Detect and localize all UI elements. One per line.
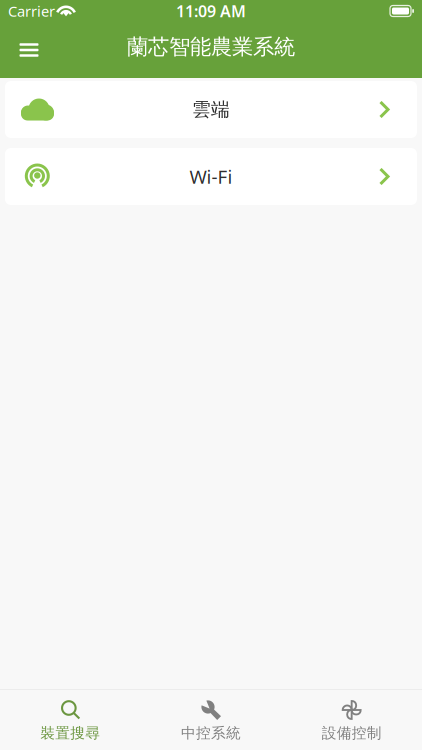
button[interactable]: 雲端 bbox=[5, 81, 417, 138]
staticText: 中控系統 bbox=[181, 724, 241, 742]
staticText: 雲端 bbox=[192, 98, 230, 121]
staticText: Wi-Fi bbox=[189, 164, 232, 189]
button[interactable]: 設備控制 bbox=[281, 695, 422, 744]
staticText: 裝置搜尋 bbox=[40, 724, 100, 742]
button[interactable]: 裝置搜尋 bbox=[0, 695, 141, 744]
button[interactable]: Wi-Fi bbox=[5, 148, 417, 205]
staticText: 11:09 AM bbox=[176, 0, 246, 22]
staticText: Carrier bbox=[8, 1, 55, 21]
staticText: 蘭芯智能農業系統 bbox=[127, 34, 295, 60]
button[interactable]: Menu bbox=[7, 28, 51, 72]
button[interactable]: 中控系統 bbox=[141, 695, 281, 744]
staticText: 設備控制 bbox=[322, 724, 382, 742]
